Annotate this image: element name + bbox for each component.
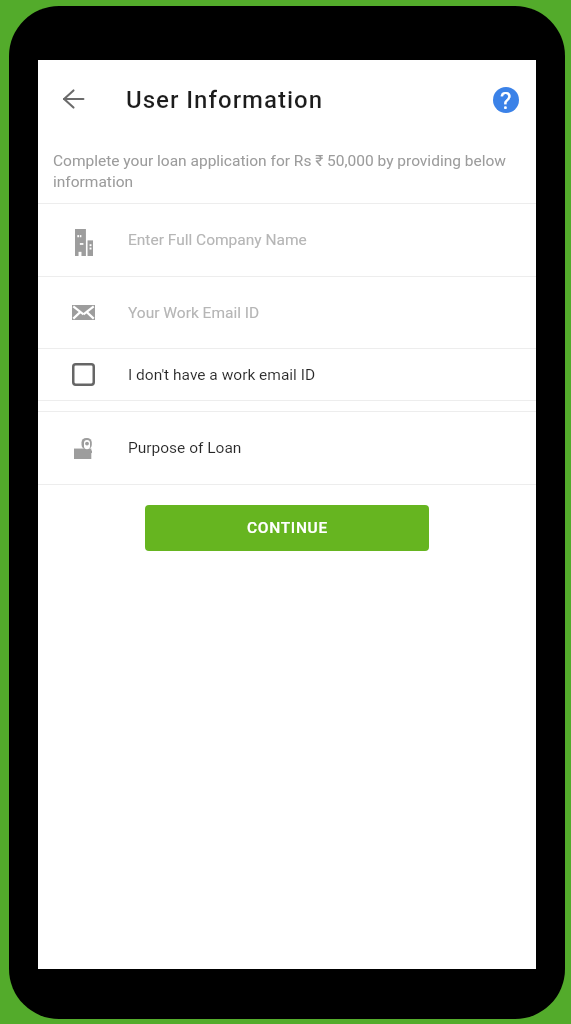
staticText: Your Work Email ID	[128, 304, 260, 322]
button[interactable]: Purpose of Loan	[38, 412, 536, 484]
staticText: ?	[500, 87, 512, 113]
staticText: CONTINUE	[247, 519, 328, 537]
button[interactable]: Help	[486, 80, 526, 120]
staticText: Purpose of Loan	[128, 439, 242, 457]
button[interactable]: Your Work Email ID	[38, 277, 536, 348]
button[interactable]: Back	[52, 79, 94, 121]
button[interactable]: I don't have a work email ID	[38, 349, 536, 400]
staticText: I don't have a work email ID	[128, 366, 316, 384]
staticText: User Information	[126, 86, 324, 114]
button[interactable]: Enter Full Company Name	[38, 204, 536, 276]
button[interactable]: CONTINUE	[145, 505, 429, 551]
staticText: Complete your loan application for Rs ₹ …	[53, 152, 512, 191]
staticText: Enter Full Company Name	[128, 231, 307, 249]
